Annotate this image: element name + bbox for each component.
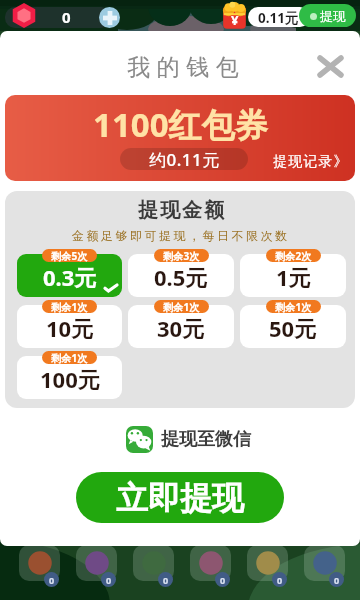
staticText: 剩余1次 <box>275 300 312 313</box>
staticText: 0 <box>277 574 283 586</box>
staticText: 0 <box>220 574 226 586</box>
button[interactable]: Add <box>99 7 120 28</box>
staticText: 0.5元 <box>154 262 208 292</box>
button[interactable]: 0.5元 <box>128 254 234 297</box>
staticText: 立即提现 <box>116 478 244 518</box>
button[interactable]: Item 6 <box>304 545 345 581</box>
button[interactable]: 提现 <box>299 4 356 27</box>
button[interactable]: Item 2 <box>76 545 117 581</box>
staticText: 0.3元 <box>43 262 97 292</box>
staticText: 1元 <box>276 262 311 292</box>
staticText: 提现金额 <box>137 198 225 223</box>
staticText: 提现至微信 <box>161 428 251 451</box>
button[interactable]: Item 3 <box>133 545 174 581</box>
staticText: 0 <box>106 574 112 586</box>
button[interactable]: Item 4 <box>190 545 231 581</box>
staticText: 0 <box>163 574 169 586</box>
staticText: 50元 <box>269 313 317 343</box>
button[interactable]: Item 1 <box>19 545 60 581</box>
button[interactable]: 30元 <box>128 305 234 348</box>
button[interactable]: Coins <box>221 1 248 30</box>
staticText: 提现 <box>320 8 346 24</box>
staticText: 我的钱包 <box>124 53 242 82</box>
staticText: 0 <box>62 7 71 27</box>
staticText: 剩余1次 <box>51 351 88 364</box>
button[interactable]: Item 5 <box>247 545 288 581</box>
staticText: 金额足够即可提现，每日不限次数 <box>72 228 290 243</box>
staticText: 提现记录》 <box>273 153 348 171</box>
button[interactable]: 0.3元 <box>17 254 122 297</box>
staticText: 剩余5次 <box>51 249 88 262</box>
staticText: 10元 <box>46 313 94 343</box>
button[interactable]: 50元 <box>240 305 346 348</box>
staticText: 30元 <box>157 313 205 343</box>
button[interactable]: 10元 <box>17 305 122 348</box>
staticText: ¥ <box>231 11 239 29</box>
staticText: 100元 <box>40 364 100 394</box>
button[interactable]: Gems <box>11 3 37 28</box>
staticText: 剩余3次 <box>163 249 200 262</box>
button[interactable]: Close <box>310 46 350 86</box>
staticText: 剩余1次 <box>163 300 200 313</box>
button[interactable]: 提现记录》 <box>273 153 348 171</box>
staticText: 剩余1次 <box>51 300 88 313</box>
staticText: 0 <box>334 574 340 586</box>
button[interactable]: 1元 <box>240 254 346 297</box>
staticText: 0.11元 <box>258 9 299 27</box>
staticText: 约0.11元 <box>149 148 220 170</box>
staticText: 剩余2次 <box>275 249 312 262</box>
button[interactable]: 立即提现 <box>76 472 284 523</box>
staticText: 0 <box>49 574 55 586</box>
staticText: 1100红包券 <box>93 102 268 147</box>
button[interactable]: 提现至微信 <box>126 426 251 453</box>
button[interactable]: 100元 <box>17 356 122 399</box>
